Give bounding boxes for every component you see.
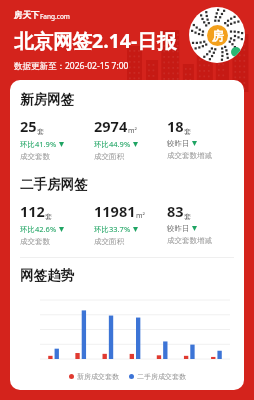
staticText: 2974 (94, 116, 128, 136)
staticText: 环比41.9% (20, 139, 57, 149)
staticText: 房 (212, 28, 224, 43)
staticText: 环比44.9% (94, 139, 131, 149)
staticText: 套 (184, 212, 191, 221)
staticText: 北京网签2.14-日报 (14, 27, 177, 54)
staticText: 11981 (94, 201, 136, 221)
staticText: 较昨日 (167, 139, 190, 148)
staticText: 较昨日 (167, 224, 190, 233)
staticText: 成交套数 (20, 237, 50, 246)
staticText: 环比42.6% (20, 224, 57, 234)
staticText: 112 (20, 201, 45, 221)
staticText: 新房网签 (20, 91, 74, 108)
button[interactable]: 11981 (94, 201, 167, 246)
staticText: 成交套数增减 (167, 236, 212, 245)
button[interactable]: 18 (167, 116, 234, 160)
staticText: 套 (184, 127, 191, 136)
staticText: 83 (167, 201, 184, 221)
staticText: 二手房网签 (20, 176, 88, 193)
staticText: 房天下 (14, 10, 40, 21)
button[interactable]: 83 (167, 201, 234, 245)
staticText: 数据更新至：2026-02-15 7:00 (14, 60, 129, 72)
button[interactable]: 112 (20, 201, 94, 246)
staticText: 成交面积 (94, 237, 124, 246)
staticText: 25 (20, 116, 37, 136)
button[interactable]: 二维码 (189, 7, 245, 63)
button[interactable]: 2974 (94, 116, 167, 161)
staticText: m² (128, 126, 137, 136)
staticText: 套 (37, 127, 44, 136)
staticText: 成交套数增减 (167, 151, 212, 160)
staticText: Fang.com (40, 12, 70, 21)
staticText: 套 (45, 212, 52, 221)
staticText: m² (136, 211, 145, 221)
button[interactable]: 25 (20, 116, 94, 161)
staticText: 环比33.7% (94, 224, 131, 234)
staticText: 二手房成交套数 (137, 372, 186, 381)
staticText: 成交面积 (94, 152, 124, 161)
staticText: 网签趋势 (20, 267, 74, 284)
staticText: 新房成交套数 (77, 372, 119, 381)
staticText: 成交套数 (20, 152, 50, 161)
staticText: 18 (167, 116, 184, 136)
